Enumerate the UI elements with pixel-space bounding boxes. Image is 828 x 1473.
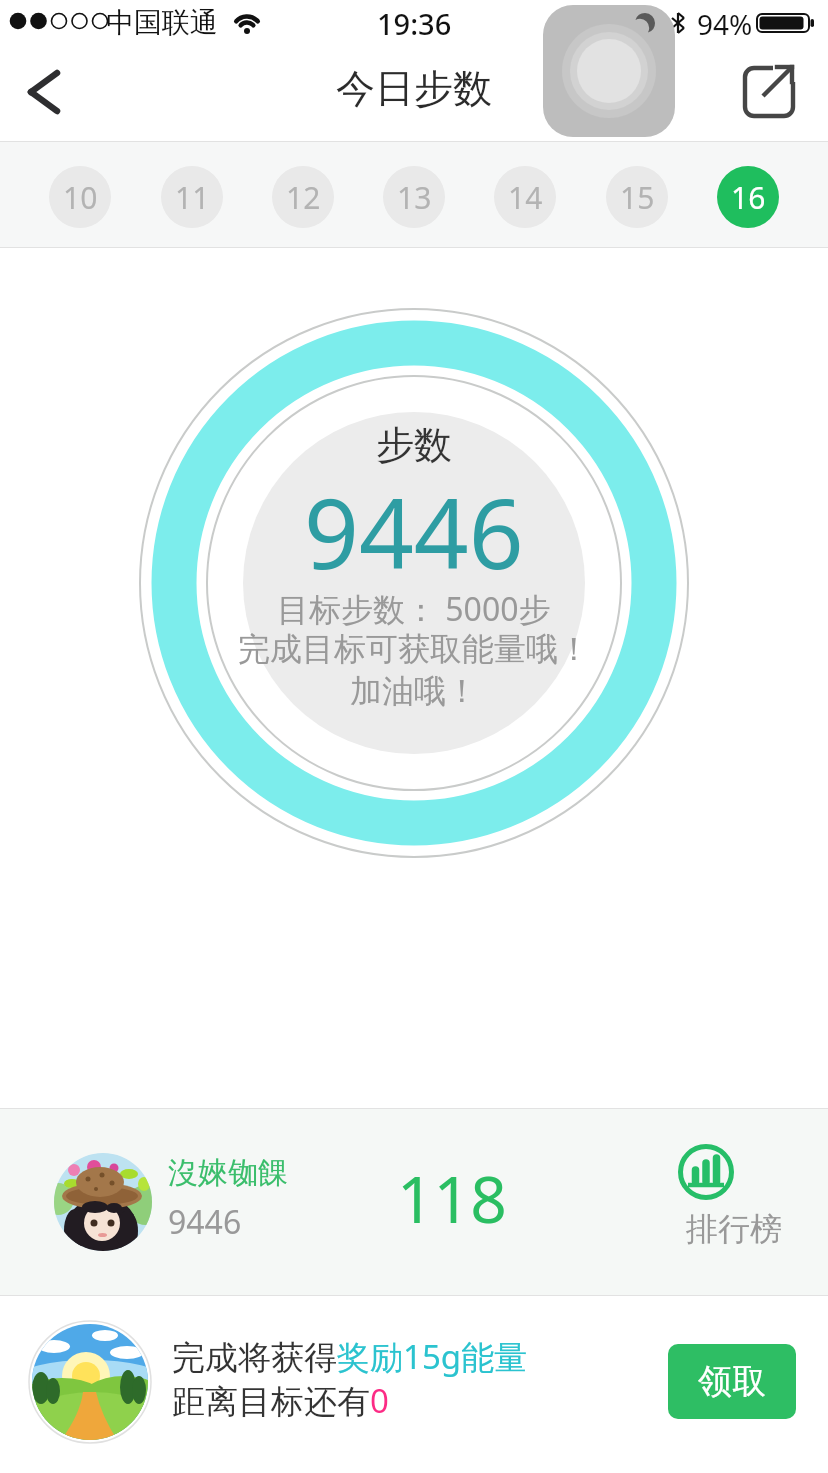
button[interactable]: 16 <box>717 166 779 228</box>
staticText: 16 <box>731 177 766 218</box>
button[interactable]: 10 <box>49 166 111 228</box>
staticText: 完成目标可获取能量哦！ <box>238 629 590 669</box>
staticText: 10 <box>63 177 98 218</box>
staticText: 9446 <box>304 466 524 597</box>
staticText: 94% <box>697 5 753 43</box>
button[interactable]: 沒婡铷餜 <box>0 1109 828 1295</box>
button[interactable] <box>735 60 803 126</box>
staticText: 14 <box>508 177 543 218</box>
staticText: 距离目标还有0 <box>172 1378 389 1423</box>
button[interactable]: 排行榜 <box>670 1137 796 1269</box>
staticText: 加油哦！ <box>350 671 478 711</box>
staticText: 12 <box>286 177 321 218</box>
button[interactable]: 15 <box>606 166 668 228</box>
staticText: 19:36 <box>377 4 452 43</box>
staticText: 排行榜 <box>686 1209 782 1249</box>
button[interactable]: 领取 <box>668 1344 796 1419</box>
staticText: 完成将获得奖励15g能量 <box>172 1334 528 1379</box>
staticText: 118 <box>397 1155 507 1242</box>
staticText: 中国联通 <box>106 5 218 40</box>
button[interactable] <box>18 54 74 126</box>
button[interactable]: 12 <box>272 166 334 228</box>
staticText: 9446 <box>168 1200 242 1244</box>
staticText: 13 <box>397 177 432 218</box>
staticText: 今日步数 <box>336 64 492 113</box>
staticText: 步数 <box>376 421 452 469</box>
staticText: 领取 <box>698 1360 766 1403</box>
button[interactable]: 14 <box>494 166 556 228</box>
staticText: 目标步数： 5000步 <box>277 587 551 631</box>
staticText: 11 <box>175 177 210 218</box>
staticText: 15 <box>620 177 655 218</box>
button[interactable]: 13 <box>383 166 445 228</box>
button[interactable]: 11 <box>161 166 223 228</box>
staticText: 沒婡铷餜 <box>168 1154 288 1192</box>
button[interactable] <box>543 5 675 137</box>
